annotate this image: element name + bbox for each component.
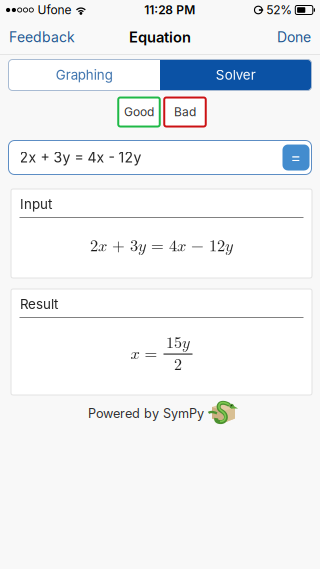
staticText: 11:28 PM [144, 3, 195, 17]
staticText: Graphing [56, 67, 113, 83]
staticText: Result [20, 296, 58, 312]
button[interactable]: Bad [164, 97, 206, 126]
staticText: = [290, 148, 301, 167]
staticText: Input [20, 196, 52, 212]
button[interactable]: Good [118, 97, 160, 126]
staticText: Done [277, 29, 311, 45]
staticText: Equation [129, 28, 191, 46]
staticText: Solver [216, 67, 256, 83]
button[interactable]: Feedback [0, 20, 84, 54]
button[interactable]: Done [268, 20, 320, 54]
staticText: 2 [174, 357, 182, 373]
button[interactable]: Solver [160, 59, 311, 90]
button[interactable]: Solve [282, 144, 309, 170]
staticText: 52% [266, 3, 292, 17]
staticText: Bad [174, 105, 196, 119]
staticText: 𝑥 = [130, 346, 157, 362]
staticText: 2𝑥 + 3𝑦 = 4𝑥 − 12𝑦 [90, 238, 233, 254]
button[interactable]: Graphing [8, 59, 160, 90]
staticText: Powered by SymPy [88, 406, 204, 421]
staticText: Good [124, 105, 154, 119]
staticText: Ufone [37, 3, 71, 17]
staticText: 15𝑦 [166, 335, 190, 351]
staticText: Feedback [9, 29, 75, 45]
staticText: 2x + 3y = 4x - 12y [19, 149, 141, 166]
